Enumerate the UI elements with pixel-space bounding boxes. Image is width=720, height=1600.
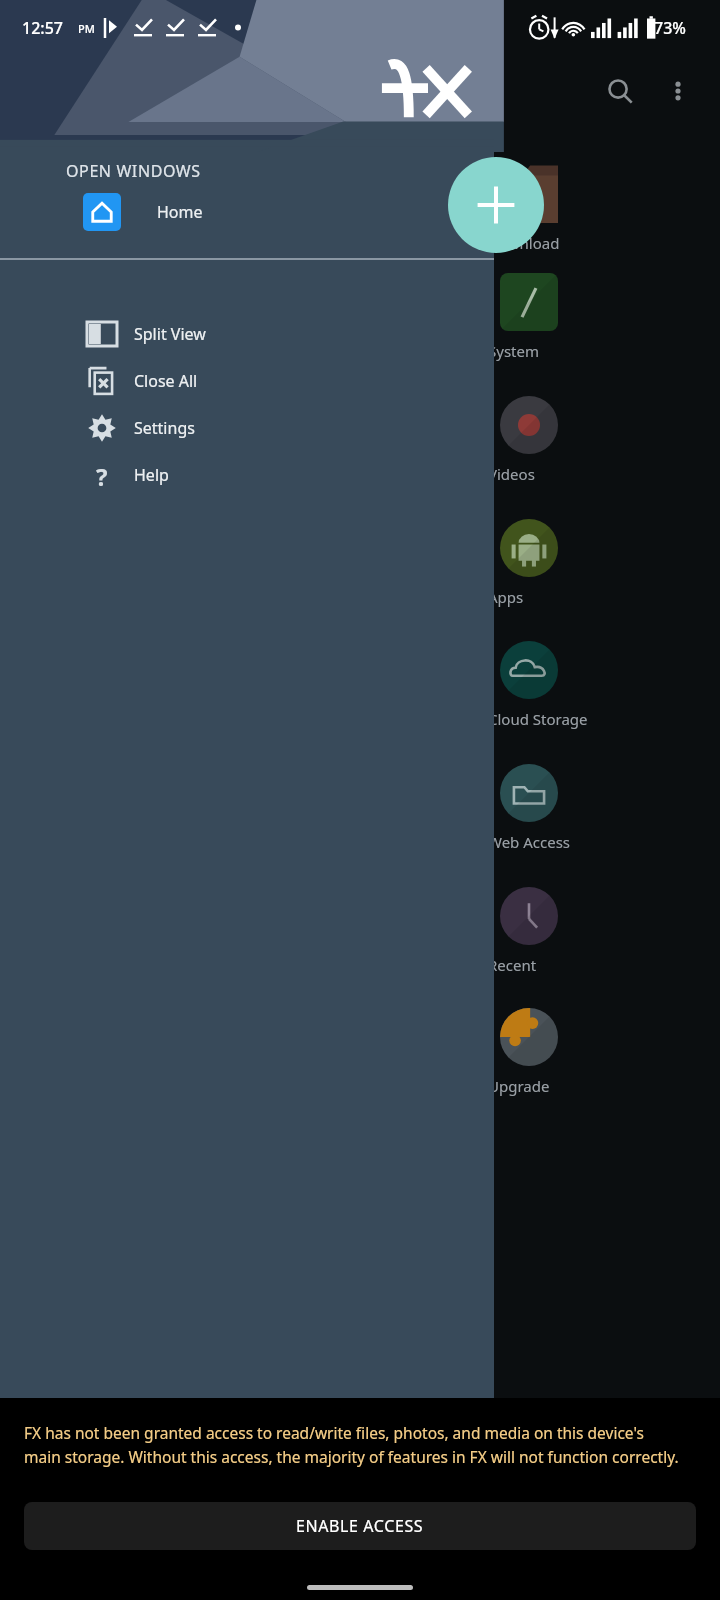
- staticText: Close All: [134, 370, 198, 392]
- staticText: System: [488, 341, 539, 361]
- button[interactable]: ENABLE ACCESS: [24, 1502, 696, 1550]
- button[interactable]: Web Access: [480, 746, 720, 862]
- button[interactable]: Videos: [480, 378, 720, 494]
- button[interactable]: Settings: [0, 404, 494, 451]
- staticText: Apps: [488, 587, 524, 607]
- button[interactable]: Cloud Storage: [480, 623, 720, 739]
- staticText: Recent: [488, 955, 537, 975]
- staticText: FX has not been granted access to read/w…: [24, 1422, 684, 1467]
- staticText: Settings: [134, 417, 195, 439]
- staticText: 73%: [654, 17, 686, 39]
- button[interactable]: More options: [650, 63, 706, 119]
- button[interactable]: Search: [592, 63, 648, 119]
- button[interactable]: Close All: [0, 357, 494, 404]
- button[interactable]: Recent: [480, 869, 720, 985]
- button[interactable]: Add: [448, 157, 544, 253]
- staticText: Upgrade: [488, 1076, 550, 1096]
- button[interactable]: Home: [0, 186, 494, 238]
- button[interactable]: Upgrade: [480, 990, 720, 1106]
- staticText: Help: [134, 464, 169, 486]
- staticText: PM: [78, 21, 95, 36]
- button[interactable]: System: [480, 255, 720, 371]
- staticText: Split View: [134, 323, 206, 345]
- button[interactable]: Apps: [480, 501, 720, 617]
- staticText: ?: [96, 460, 108, 490]
- staticText: Videos: [488, 464, 535, 484]
- button[interactable]: Download: [480, 147, 720, 263]
- staticText: ENABLE ACCESS: [296, 1515, 424, 1537]
- staticText: Web Access: [488, 832, 571, 852]
- button[interactable]: Split View: [0, 310, 494, 357]
- staticText: 12:57: [22, 17, 63, 39]
- staticText: Cloud Storage: [488, 709, 588, 729]
- button[interactable]: ?: [0, 451, 494, 498]
- staticText: Home: [157, 201, 203, 223]
- staticText: Download: [488, 233, 560, 253]
- staticText: OPEN WINDOWS: [66, 160, 201, 182]
